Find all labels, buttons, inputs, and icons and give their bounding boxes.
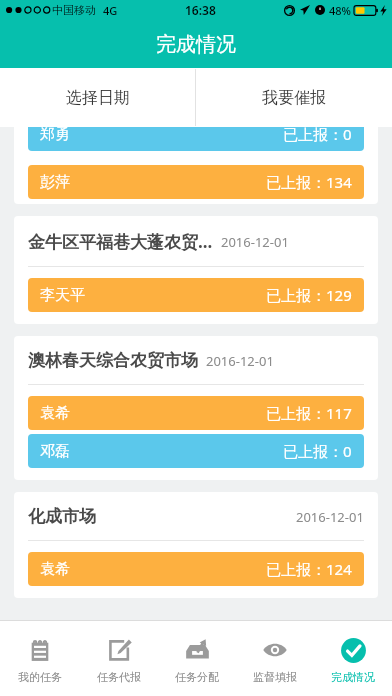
button[interactable]: 任务分配 [158,621,236,696]
staticText: 2016-12-01 [296,508,364,526]
staticText: 已上报：0 [283,127,352,144]
staticText: 4G [103,3,118,18]
staticText: 选择日期 [66,88,130,108]
staticText: 已上报：124 [266,559,352,579]
button[interactable]: 郑勇 [28,127,364,151]
button[interactable]: 金牛区平福巷大蓬农贸... [14,216,378,324]
staticText: 金牛区平福巷大蓬农贸... [28,230,213,253]
staticText: 已上报：129 [266,285,352,305]
staticText: 完成情况 [331,670,375,684]
staticText: 化成市场 [28,506,96,527]
staticText: 袁希 [40,404,70,423]
button[interactable]: 化成市场 [14,492,378,598]
staticText: 彭萍 [40,173,70,192]
button[interactable]: 任务代报 [79,621,158,696]
staticText: 已上报：0 [283,441,352,461]
staticText: 完成情况 [156,32,236,57]
staticText: 任务代报 [97,670,141,684]
staticText: 2016-12-01 [206,352,274,370]
staticText: 袁希 [40,560,70,579]
button[interactable]: 完成情况 [314,621,392,696]
button[interactable]: 我的任务 [0,621,79,696]
staticText: 已上报：117 [266,403,352,423]
staticText: 中国移动 [52,3,96,17]
staticText: 16:38 [185,2,216,18]
button[interactable]: 监督填报 [236,621,314,696]
staticText: 澳林春天综合农贸市场 [28,350,198,371]
staticText: 48% [329,3,351,18]
staticText: 监督填报 [253,670,297,684]
button[interactable]: 彭萍 [28,165,364,199]
staticText: 我要催报 [262,88,326,108]
button[interactable]: 邓磊 [28,434,364,468]
staticText: 郑勇 [40,127,70,144]
button[interactable]: 郑勇 [14,127,378,204]
staticText: 我的任务 [18,670,62,684]
staticText: 已上报：134 [266,172,352,192]
button[interactable]: 袁希 [28,552,364,586]
staticText: 任务分配 [175,670,219,684]
button[interactable]: 李天平 [28,278,364,312]
button[interactable]: 澳林春天综合农贸市场 [14,336,378,480]
staticText: 2016-12-01 [221,233,289,251]
staticText: 李天平 [40,286,85,305]
button[interactable]: 选择日期 [0,68,195,127]
button[interactable]: 袁希 [28,396,364,430]
button[interactable]: 我要催报 [196,68,392,127]
staticText: 邓磊 [40,442,70,461]
